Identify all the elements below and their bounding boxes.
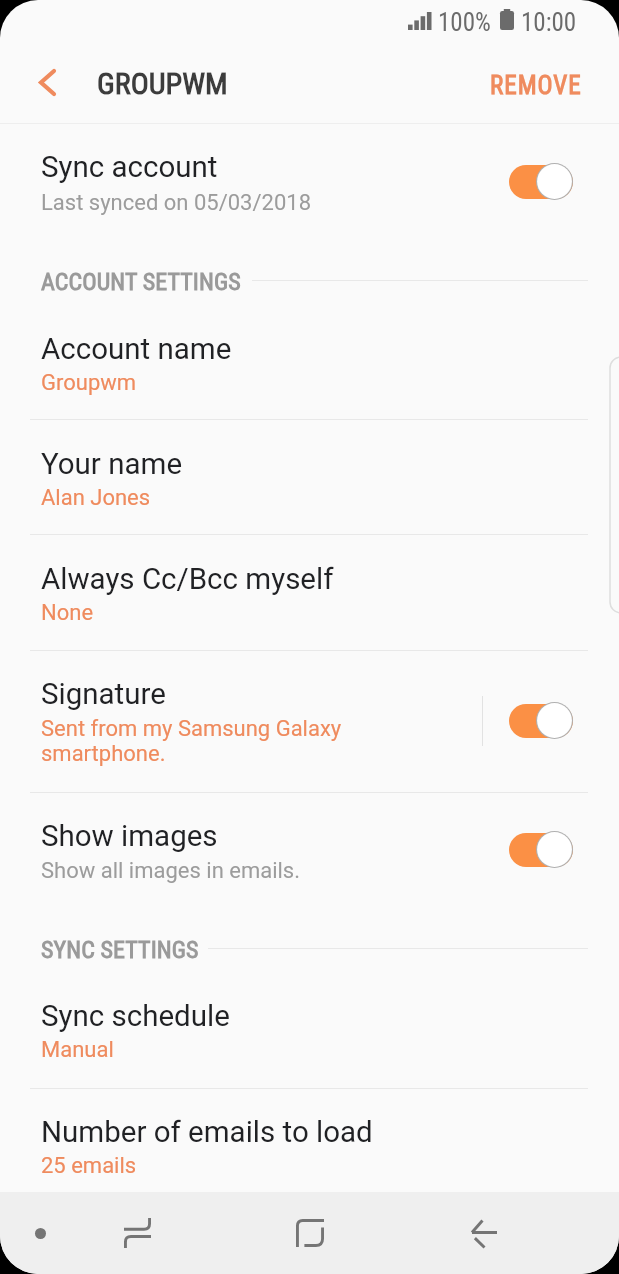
staticText: ACCOUNT SETTINGS [41,268,241,296]
button[interactable]: Number of emails to load [0,1109,619,1202]
staticText: GROUPWM [97,66,228,101]
button[interactable]: Signature [0,650,482,792]
button[interactable]: Back [434,1192,534,1274]
staticText: None [41,600,94,626]
button[interactable]: Show menu [6,1192,74,1274]
button[interactable]: Account name [0,326,619,419]
staticText: Number of emails to load [41,1115,373,1150]
button[interactable]: Show images [0,792,619,905]
button[interactable]: Home [260,1192,360,1274]
button[interactable]: Toggle, on [509,831,573,868]
button[interactable]: Navigate up [13,54,81,112]
staticText: REMOVE [490,71,582,100]
staticText: 25 emails [41,1153,137,1179]
button[interactable]: Toggle, on [509,163,573,200]
button[interactable]: Sync schedule [0,993,619,1086]
staticText: Your name [41,447,183,482]
staticText: 100% [438,8,491,37]
button[interactable]: Always Cc/Bcc myself [0,556,619,649]
staticText: 10:00 [521,8,577,37]
staticText: Sent from my Samsung Galaxy smartphone. [41,716,342,766]
button[interactable]: Toggle, on [509,702,573,739]
staticText: Sync account [41,150,218,185]
staticText: Sync schedule [41,999,230,1034]
staticText: Alan Jones [41,485,151,511]
staticText: Signature [41,677,166,712]
button[interactable]: REMOVE [453,48,617,120]
staticText: Last synced on 05/03/2018 [41,190,312,216]
staticText: Manual [41,1037,114,1063]
staticText: Show all images in emails. [41,858,301,884]
staticText: Groupwm [41,370,137,396]
button[interactable]: Your name [0,441,619,534]
staticText: Account name [41,332,232,367]
staticText: Always Cc/Bcc myself [41,562,334,597]
staticText: SYNC SETTINGS [41,936,199,964]
staticText: Show images [41,819,218,854]
button[interactable]: Recent apps [87,1192,187,1274]
button[interactable]: Sync account [0,124,619,234]
